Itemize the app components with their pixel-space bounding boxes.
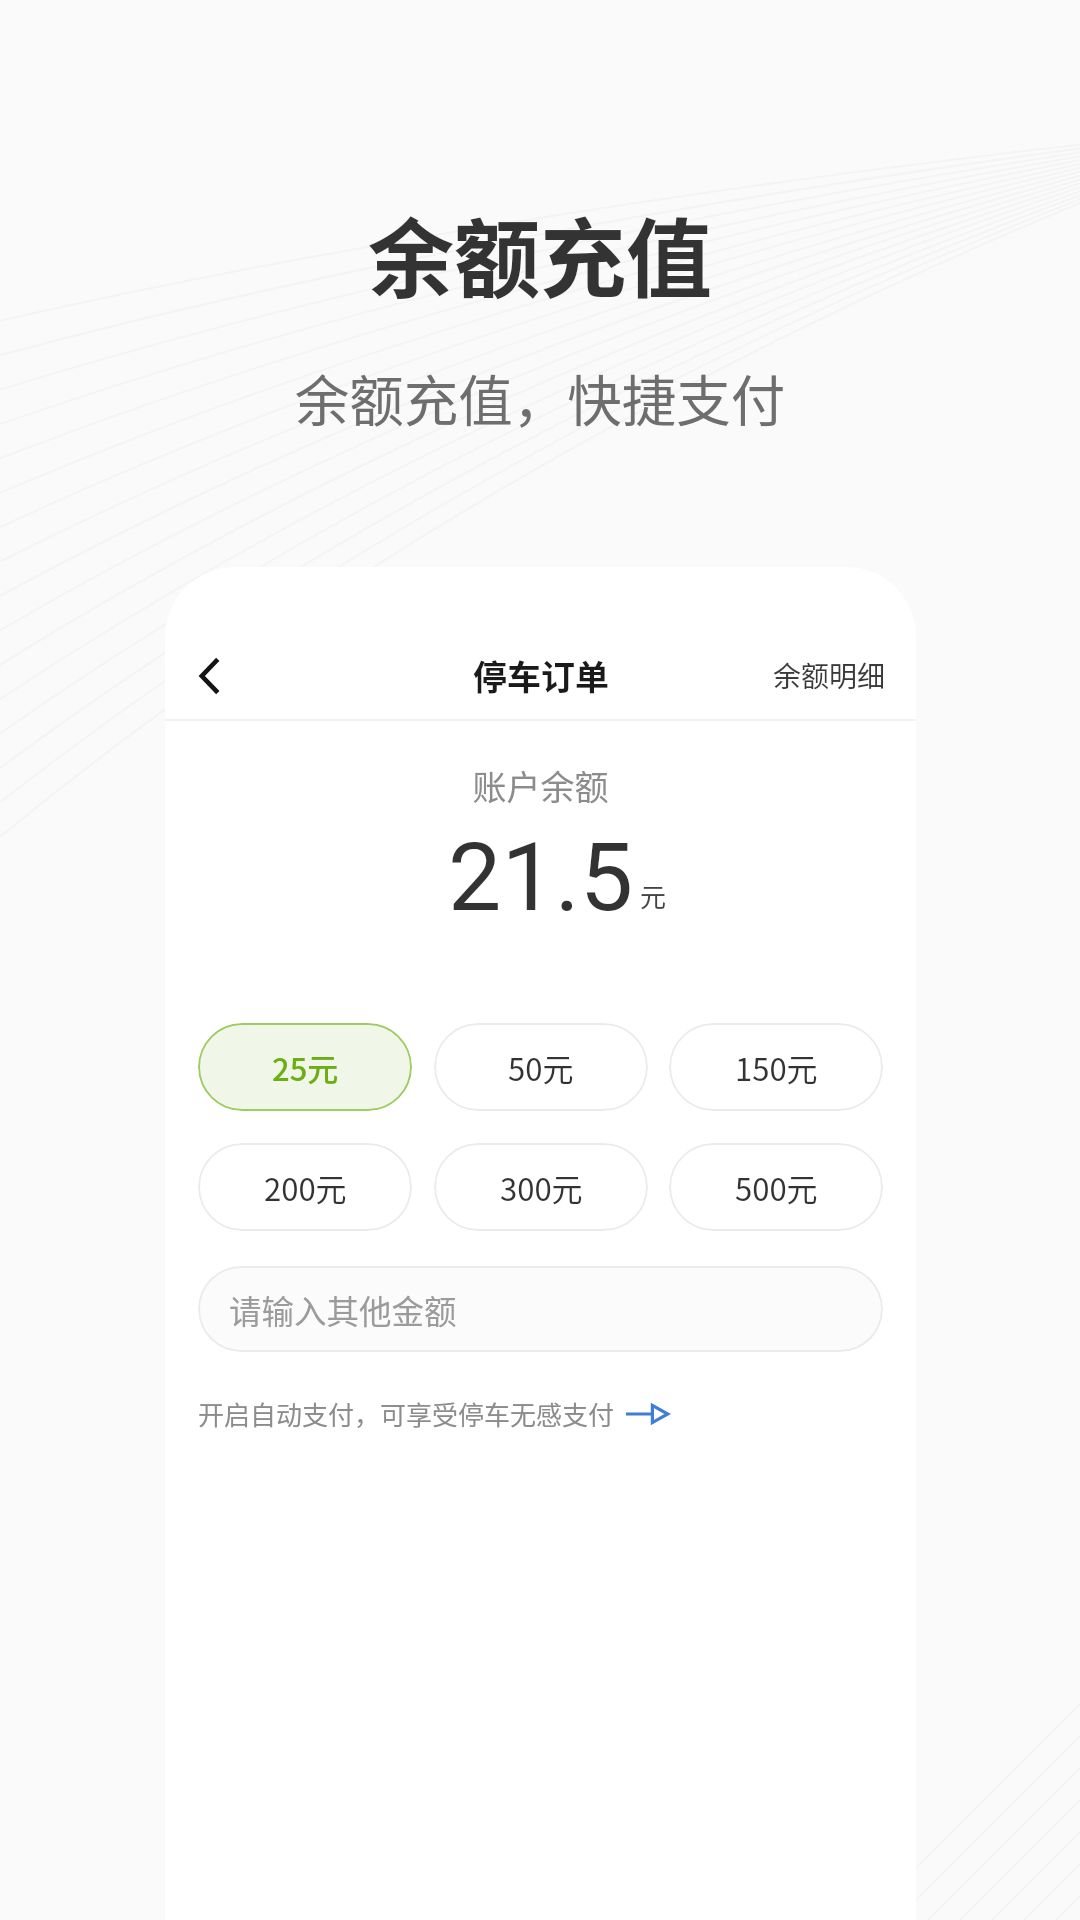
button[interactable]: 500元 xyxy=(669,1143,883,1231)
button[interactable]: 请输入其他金额 xyxy=(198,1266,883,1352)
staticText: 余额充值，快捷支付 xyxy=(0,358,1080,437)
button[interactable]: 25元 xyxy=(198,1023,412,1111)
staticText: 开启自动支付，可享受停车无感支付 xyxy=(198,1395,615,1433)
staticText: 请输入其他金额 xyxy=(229,1286,457,1333)
button[interactable]: 余额明细 xyxy=(743,645,916,706)
staticText: 300元 xyxy=(500,1165,583,1210)
button[interactable]: 150元 xyxy=(669,1023,883,1111)
staticText: 元 xyxy=(640,877,667,915)
staticText: 21.5 xyxy=(448,822,634,933)
staticText: 25元 xyxy=(272,1045,339,1090)
staticText: 账户余额 xyxy=(165,761,916,810)
button[interactable]: 200元 xyxy=(198,1143,412,1231)
button[interactable]: 300元 xyxy=(434,1143,648,1231)
staticText: 余额明细 xyxy=(773,655,886,696)
staticText: 50元 xyxy=(508,1045,574,1090)
staticText: 余额充值 xyxy=(0,191,1080,316)
staticText: 500元 xyxy=(735,1165,818,1210)
staticText: 150元 xyxy=(735,1045,818,1090)
button[interactable]: 返回 xyxy=(177,644,241,708)
button[interactable]: 50元 xyxy=(434,1023,648,1111)
button[interactable]: 开启自动支付，可享受停车无感支付 xyxy=(198,1395,670,1433)
staticText: 停车订单 xyxy=(473,651,609,700)
staticText: 200元 xyxy=(264,1165,347,1210)
